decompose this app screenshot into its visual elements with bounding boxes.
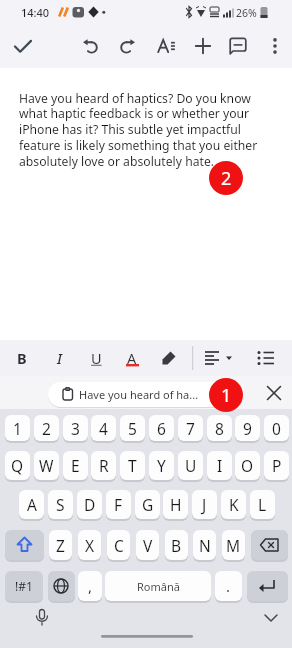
button[interactable] bbox=[265, 36, 285, 56]
button[interactable] bbox=[34, 608, 50, 628]
button[interactable]: 9 bbox=[235, 415, 260, 441]
button[interactable]: I bbox=[57, 348, 62, 368]
staticText: 1 bbox=[13, 418, 22, 439]
button[interactable]: A bbox=[127, 348, 137, 368]
button[interactable] bbox=[156, 36, 176, 56]
staticText: 1 bbox=[221, 383, 232, 408]
button[interactable]: Q bbox=[5, 451, 30, 480]
staticText: 4 bbox=[99, 418, 108, 439]
staticText: D bbox=[84, 494, 96, 515]
button[interactable]: , bbox=[78, 571, 102, 601]
staticText: N bbox=[199, 535, 211, 556]
button[interactable]: 8 bbox=[207, 415, 232, 441]
staticText: K bbox=[229, 494, 239, 515]
button[interactable]: U bbox=[178, 451, 203, 480]
button[interactable]: 6 bbox=[149, 415, 174, 441]
button[interactable]: W bbox=[34, 451, 59, 480]
button[interactable]: D bbox=[77, 490, 102, 519]
button[interactable]: H bbox=[163, 490, 188, 519]
button[interactable]: T bbox=[120, 451, 145, 480]
button[interactable]: I bbox=[207, 451, 232, 480]
button[interactable]: F bbox=[106, 490, 131, 519]
button[interactable]: J bbox=[192, 490, 217, 519]
button[interactable]: P bbox=[264, 451, 289, 480]
staticText: U bbox=[185, 455, 197, 476]
button[interactable] bbox=[266, 385, 282, 401]
button[interactable] bbox=[257, 350, 275, 366]
staticText: B bbox=[171, 535, 182, 556]
staticText: 6 bbox=[157, 418, 166, 439]
staticText: 8 bbox=[215, 418, 224, 439]
staticText: 0 bbox=[272, 418, 281, 439]
button[interactable]: 0 bbox=[264, 415, 289, 441]
staticText: 3 bbox=[71, 418, 80, 439]
button[interactable]: M bbox=[222, 530, 245, 560]
staticText: 2 bbox=[221, 166, 232, 191]
button[interactable]: 7 bbox=[178, 415, 203, 441]
button[interactable] bbox=[81, 36, 101, 56]
button[interactable] bbox=[13, 36, 33, 56]
button[interactable]: G bbox=[135, 490, 160, 519]
button[interactable] bbox=[228, 36, 248, 56]
staticText: Have you heard of haptics? Do you know w… bbox=[19, 90, 258, 170]
button[interactable]: L bbox=[250, 490, 275, 519]
staticText: R bbox=[99, 455, 109, 476]
button[interactable]: C bbox=[107, 530, 130, 560]
staticText: 2 bbox=[42, 418, 51, 439]
button[interactable]: 3 bbox=[63, 415, 88, 441]
staticText: S bbox=[56, 494, 65, 515]
staticText: Q bbox=[11, 455, 24, 476]
staticText: 7 bbox=[186, 418, 195, 439]
button[interactable] bbox=[204, 350, 236, 366]
button[interactable]: R bbox=[91, 451, 116, 480]
button[interactable]: 4 bbox=[91, 415, 116, 441]
button[interactable]: U bbox=[91, 348, 102, 368]
button[interactable]: N bbox=[193, 530, 216, 560]
staticText: T bbox=[128, 455, 137, 476]
button[interactable] bbox=[263, 612, 279, 624]
button[interactable]: 5 bbox=[120, 415, 145, 441]
button[interactable]: 1 bbox=[5, 415, 30, 441]
button[interactable]: S bbox=[48, 490, 73, 519]
button[interactable] bbox=[48, 382, 244, 407]
staticText: V bbox=[143, 535, 153, 556]
button[interactable]: O bbox=[235, 451, 260, 480]
button[interactable] bbox=[251, 530, 288, 560]
button[interactable] bbox=[48, 571, 75, 601]
button[interactable]: E bbox=[63, 451, 88, 480]
staticText: Have you heard of ha... bbox=[79, 387, 199, 402]
staticText: H bbox=[170, 494, 182, 515]
button[interactable]: K bbox=[221, 490, 246, 519]
staticText: , bbox=[88, 576, 93, 596]
button[interactable]: Z bbox=[49, 530, 72, 560]
button[interactable]: Y bbox=[149, 451, 174, 480]
staticText: 9 bbox=[243, 418, 252, 439]
button[interactable] bbox=[160, 349, 178, 367]
button[interactable]: B bbox=[17, 348, 27, 368]
staticText: 5 bbox=[128, 418, 137, 439]
button[interactable]: B bbox=[165, 530, 188, 560]
staticText: 26% bbox=[236, 6, 257, 20]
staticText: I bbox=[217, 455, 223, 476]
staticText: M bbox=[226, 535, 241, 556]
button[interactable]: A bbox=[19, 490, 44, 519]
button[interactable] bbox=[117, 36, 137, 56]
staticText: A bbox=[27, 494, 37, 515]
staticText: L bbox=[258, 494, 267, 515]
button[interactable] bbox=[5, 530, 44, 560]
button[interactable]: 2 bbox=[34, 415, 59, 441]
staticText: G bbox=[142, 494, 154, 515]
button[interactable] bbox=[193, 36, 213, 56]
button[interactable]: V bbox=[136, 530, 159, 560]
staticText: . bbox=[226, 576, 231, 596]
staticText: Română bbox=[137, 579, 180, 594]
staticText: P bbox=[272, 455, 282, 476]
button[interactable]: X bbox=[78, 530, 101, 560]
staticText: Z bbox=[56, 535, 65, 556]
button[interactable]: !#1 bbox=[5, 571, 43, 601]
staticText: E bbox=[71, 455, 80, 476]
staticText: J bbox=[202, 494, 207, 515]
button[interactable]: . bbox=[215, 571, 242, 601]
button[interactable] bbox=[247, 571, 288, 601]
button[interactable]: Română bbox=[105, 571, 211, 601]
